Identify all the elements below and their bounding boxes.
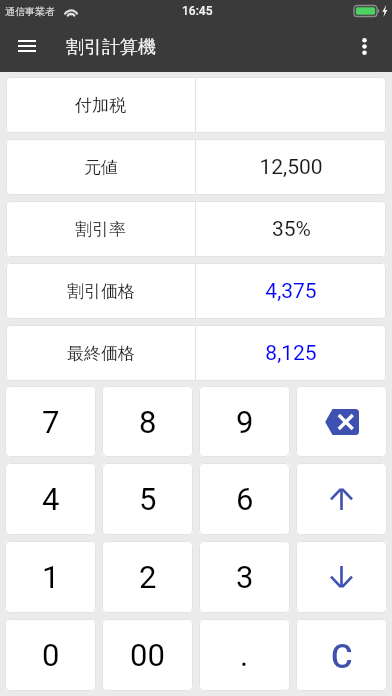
button[interactable]: Decrease — [296, 541, 387, 613]
staticText: 割引計算機 — [66, 36, 156, 59]
staticText: 1 — [42, 559, 60, 595]
staticText: 12,500 — [259, 155, 323, 180]
staticText: 元値 — [84, 157, 118, 178]
button[interactable]: More options — [344, 27, 384, 67]
staticText: 7 — [42, 404, 60, 440]
staticText: C — [331, 637, 353, 676]
button[interactable]: 3 — [199, 541, 290, 613]
staticText: 通信事業者 — [5, 5, 55, 18]
staticText: 8,125 — [265, 341, 317, 366]
staticText: 16:45 — [182, 4, 213, 18]
button[interactable]: 4 — [5, 463, 96, 535]
button[interactable]: 付加税 — [6, 77, 386, 133]
staticText: 割引価格 — [67, 281, 135, 302]
staticText: 3 — [236, 559, 254, 595]
button[interactable]: 割引価格 — [6, 263, 386, 319]
button[interactable]: 7 — [5, 386, 96, 457]
button[interactable]: 5 — [102, 463, 193, 535]
staticText: 6 — [236, 481, 254, 517]
staticText: 8 — [139, 404, 157, 440]
staticText: 最終価格 — [67, 343, 135, 364]
button[interactable]: Menu — [7, 27, 47, 67]
staticText: 0 — [42, 637, 60, 673]
button[interactable]: 0 — [5, 619, 96, 691]
staticText: 4 — [42, 481, 60, 517]
staticText: 割引率 — [75, 219, 126, 240]
staticText: 4,375 — [265, 279, 317, 304]
button[interactable]: 00 — [102, 619, 193, 691]
staticText: 9 — [236, 404, 254, 440]
staticText: 5 — [139, 481, 157, 517]
button[interactable]: . — [199, 619, 290, 691]
button[interactable]: Backspace — [296, 386, 387, 457]
button[interactable]: 最終価格 — [6, 325, 386, 381]
staticText: . — [240, 637, 249, 673]
button[interactable]: 元値 — [6, 139, 386, 195]
button[interactable]: 9 — [199, 386, 290, 457]
staticText: 00 — [130, 637, 165, 673]
staticText: 35% — [272, 217, 311, 242]
button[interactable]: 割引率 — [6, 201, 386, 257]
staticText: 付加税 — [75, 95, 126, 116]
button[interactable]: 1 — [5, 541, 96, 613]
button[interactable]: 2 — [102, 541, 193, 613]
staticText: 2 — [139, 559, 157, 595]
button[interactable]: C — [296, 619, 387, 691]
button[interactable]: 8 — [102, 386, 193, 457]
button[interactable]: Increase — [296, 463, 387, 535]
button[interactable]: 6 — [199, 463, 290, 535]
